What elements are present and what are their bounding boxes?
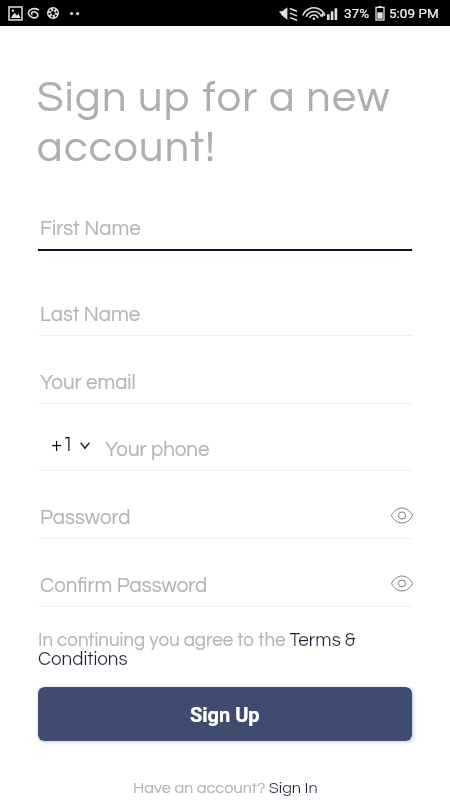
button[interactable]: Show password [388, 502, 416, 528]
staticText: Password [40, 507, 131, 528]
staticText: Last Name [40, 304, 141, 325]
staticText: 5:09 PM [389, 5, 439, 21]
button[interactable]: Sign Up [38, 687, 412, 741]
button[interactable]: First Name [38, 205, 412, 249]
staticText: Confirm Password [40, 575, 208, 596]
button[interactable]: Password [38, 494, 412, 538]
staticText: Your email [40, 372, 136, 393]
staticText: Have an account? Sign In [133, 780, 318, 797]
button[interactable]: Last Name [38, 291, 412, 335]
staticText: 37% [344, 5, 370, 21]
staticText: First Name [40, 218, 141, 239]
staticText: In continuing you agree to the Terms & C… [38, 631, 412, 669]
button[interactable]: Have an account? Sign In [133, 780, 318, 797]
button[interactable]: Show password [388, 570, 416, 596]
button[interactable]: Your email [38, 359, 412, 403]
staticText: +1 [51, 434, 74, 455]
button[interactable]: Confirm Password [38, 562, 412, 606]
button[interactable]: +1 [51, 434, 90, 455]
staticText: Your phone [105, 439, 210, 460]
staticText: Sign Up [190, 703, 260, 726]
staticText: Sign up for a new account! [37, 76, 419, 170]
